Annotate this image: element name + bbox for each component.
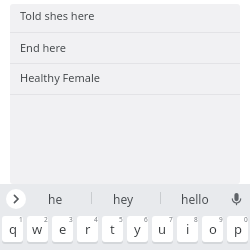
staticText: y — [134, 220, 141, 238]
button[interactable]: e — [52, 216, 73, 242]
button[interactable]: y — [127, 216, 148, 242]
staticText: 6 — [144, 215, 148, 224]
staticText: p — [234, 220, 242, 238]
staticText: he — [48, 191, 63, 207]
staticText: 4 — [94, 215, 98, 224]
staticText: i — [186, 220, 190, 238]
staticText: hey — [113, 191, 134, 207]
staticText: t — [110, 220, 115, 238]
button[interactable]: i — [177, 216, 198, 242]
staticText: 0 — [244, 215, 248, 224]
staticText: r — [85, 220, 91, 238]
button[interactable]: t — [102, 216, 123, 242]
staticText: q — [9, 220, 17, 238]
staticText: 9 — [219, 215, 223, 224]
button[interactable]: Healthy Female — [10, 64, 240, 90]
staticText: 8 — [194, 215, 198, 224]
button[interactable]: hello — [170, 188, 219, 210]
button[interactable] — [228, 189, 245, 209]
staticText: 1 — [19, 215, 23, 224]
staticText: w — [32, 220, 43, 238]
button[interactable]: r — [77, 216, 98, 242]
button[interactable]: o — [202, 216, 223, 242]
button[interactable]: p — [227, 216, 248, 242]
button[interactable]: q — [2, 216, 23, 242]
staticText: hello — [181, 191, 209, 207]
staticText: o — [209, 220, 217, 238]
button[interactable]: he — [37, 188, 74, 210]
staticText: End here — [20, 40, 67, 55]
button[interactable]: End here — [10, 34, 240, 60]
staticText: Told shes here — [20, 8, 95, 23]
staticText: 5 — [119, 215, 123, 224]
staticText: 2 — [44, 215, 48, 224]
button[interactable]: w — [27, 216, 48, 242]
staticText: e — [59, 220, 67, 238]
staticText: Healthy Female — [20, 70, 101, 85]
staticText: u — [158, 220, 167, 238]
staticText: 7 — [169, 215, 173, 224]
staticText: 3 — [69, 215, 73, 224]
button[interactable]: u — [152, 216, 173, 242]
button[interactable]: Told shes here — [10, 4, 240, 28]
button[interactable]: hey — [100, 188, 147, 210]
button[interactable] — [6, 189, 26, 209]
